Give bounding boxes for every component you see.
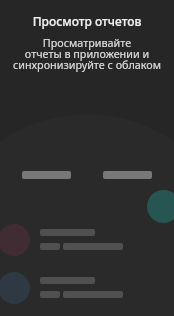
staticText: Просмотр отчетов [0, 13, 174, 29]
button[interactable]: Tab one [22, 171, 71, 179]
button[interactable]: Report item [0, 224, 174, 256]
staticText: Просматривайте отчеты в приложении и син… [0, 35, 174, 72]
button[interactable]: Tab two [103, 171, 152, 179]
button[interactable]: Report item [0, 272, 174, 304]
button[interactable]: Add report [147, 190, 174, 223]
